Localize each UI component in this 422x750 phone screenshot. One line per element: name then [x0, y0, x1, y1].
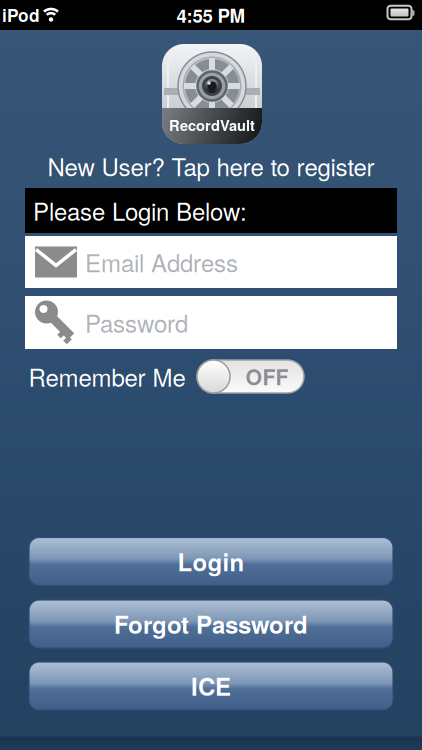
staticText: 4:55 PM — [176, 2, 245, 28]
button[interactable]: Email Address — [25, 236, 397, 288]
staticText: Forgot Password — [114, 607, 308, 641]
staticText: Login — [177, 545, 244, 578]
button[interactable]: OFF — [197, 360, 304, 393]
staticText: OFF — [245, 362, 288, 391]
staticText: iPod — [2, 3, 40, 27]
staticText: ICE — [191, 669, 231, 703]
staticText: Please Login Below: — [33, 194, 247, 227]
staticText: New User? Tap here to register — [47, 149, 374, 183]
staticText: RecordVault — [169, 115, 255, 135]
button[interactable]: New User? Tap here to register — [47, 149, 374, 183]
button[interactable]: Forgot Password — [29, 600, 393, 648]
button[interactable]: Login — [29, 537, 393, 585]
button[interactable]: ICE — [29, 662, 393, 710]
button[interactable]: Password — [25, 296, 397, 349]
staticText: Email Address — [85, 245, 238, 279]
staticText: Remember Me — [28, 360, 185, 393]
staticText: Password — [85, 306, 188, 339]
